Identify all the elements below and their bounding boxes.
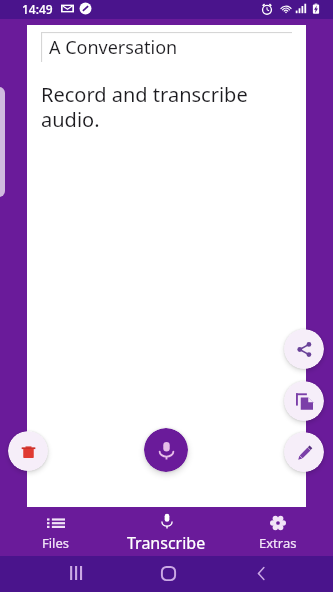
staticText: Record and transcribe audio. [41,81,256,133]
staticText: A Conversation [49,35,178,60]
button[interactable]: Extras [222,508,333,557]
button[interactable]: Transcribe [111,508,222,557]
button[interactable]: Back [243,556,279,592]
button[interactable]: Recents [57,556,93,592]
button[interactable]: Record [144,428,188,472]
button[interactable]: Home [150,556,186,592]
staticText: 14:49 [22,1,53,17]
button[interactable]: Share [284,329,324,369]
button[interactable]: Edit [284,432,324,472]
button[interactable]: Copy [284,381,324,421]
button[interactable]: Files [0,508,111,557]
staticText: Transcribe [127,532,206,554]
staticText: Extras [259,534,297,552]
button[interactable]: A Conversation [41,32,292,63]
staticText: Files [42,534,70,552]
button[interactable]: Delete [8,431,48,471]
